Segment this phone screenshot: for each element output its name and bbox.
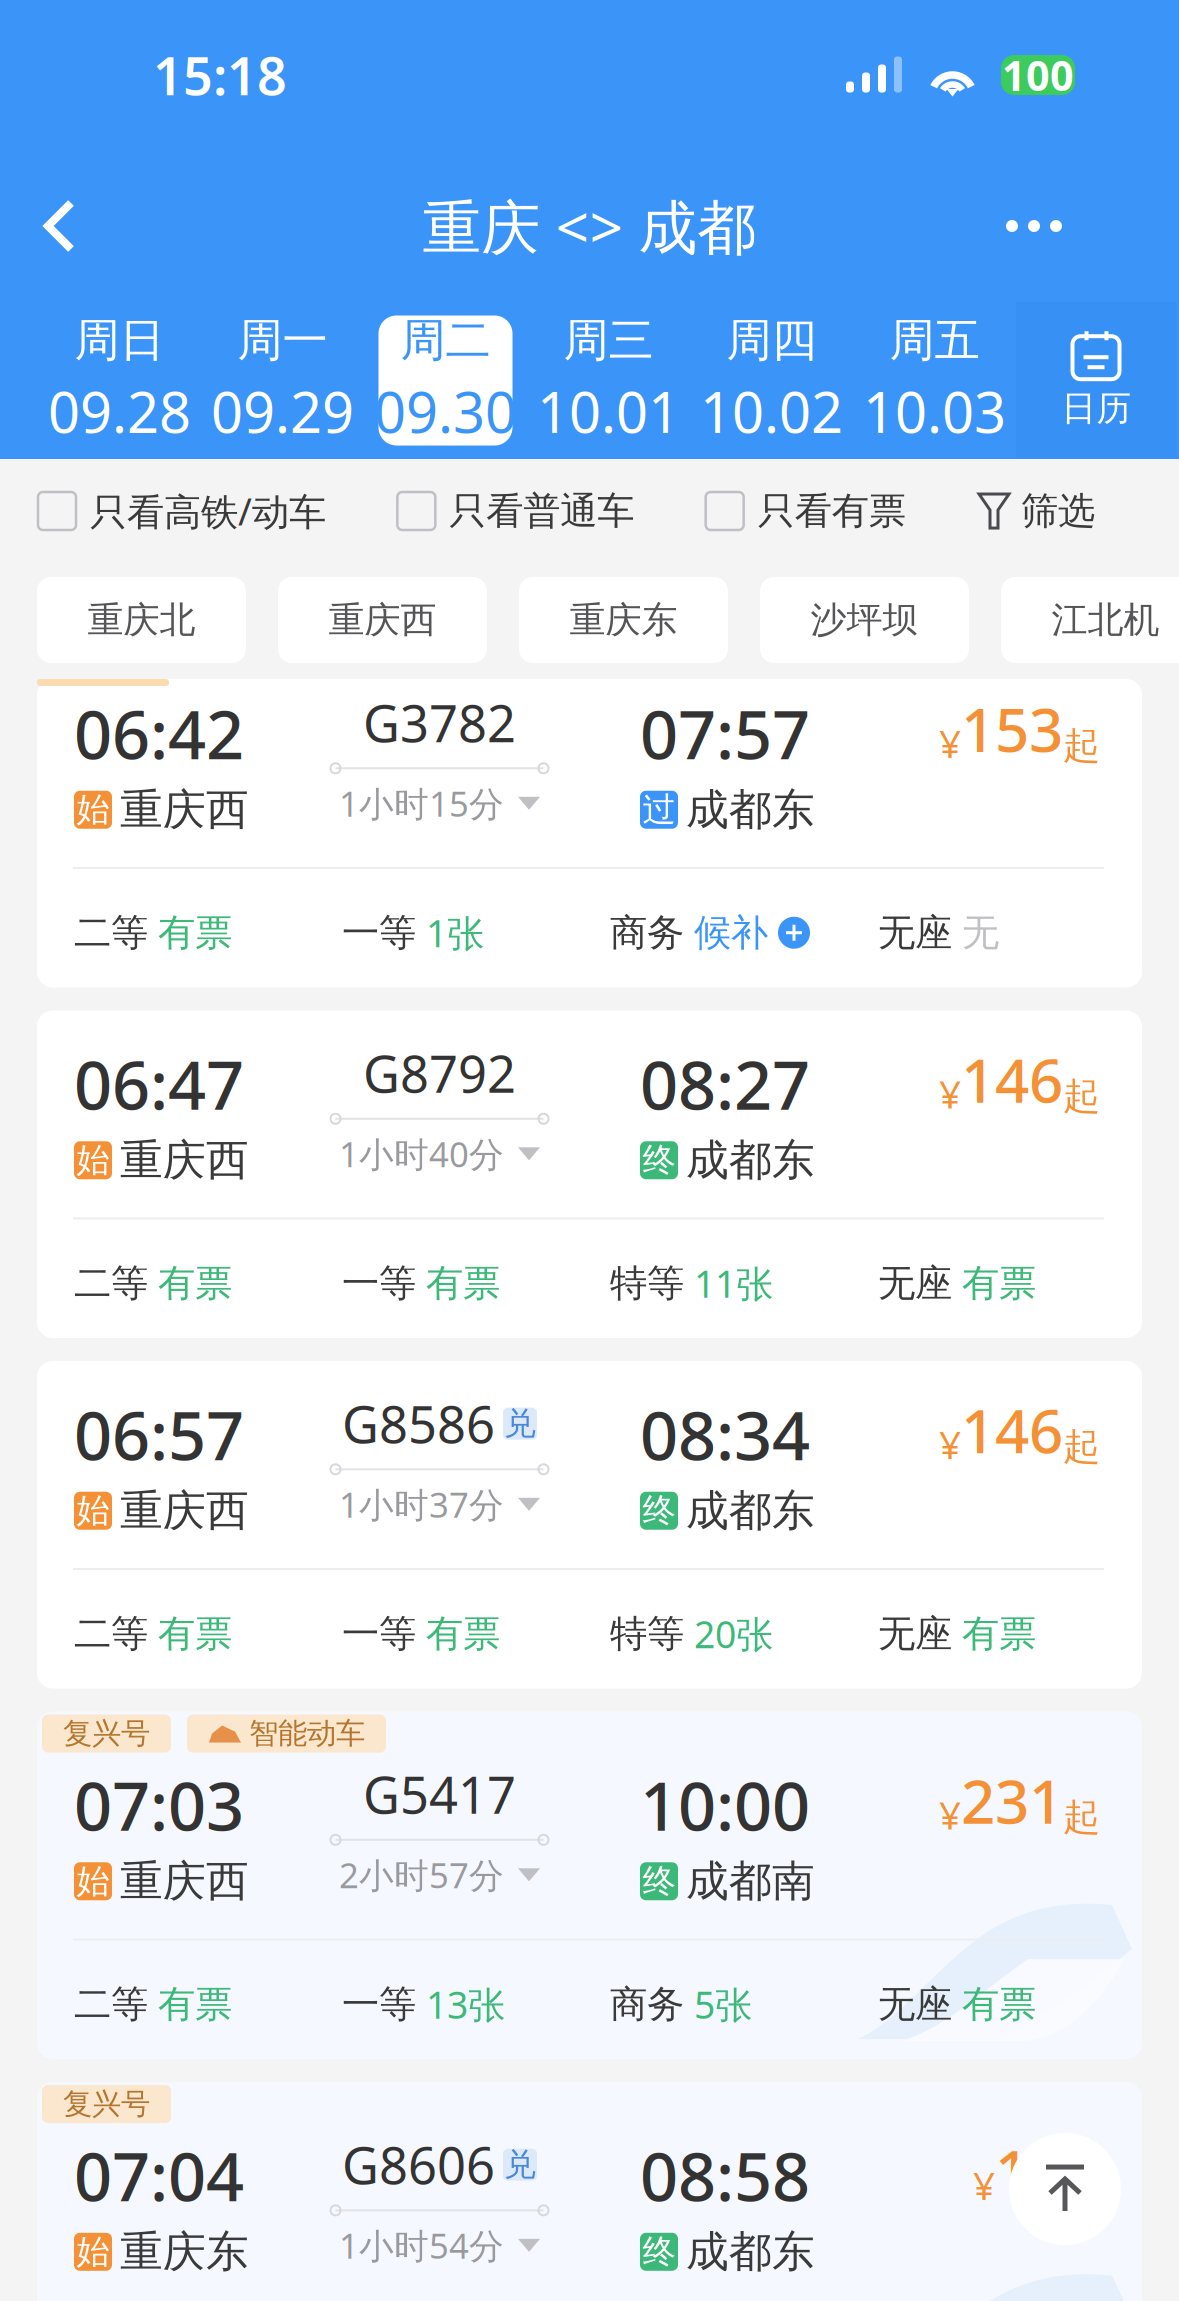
- staticText: 2小时57分: [339, 1852, 504, 1898]
- staticText: 筛选: [1021, 488, 1095, 534]
- staticText: 成都南: [686, 1855, 815, 1907]
- staticText: 周三: [563, 312, 653, 368]
- staticText: 商务: [610, 910, 684, 956]
- button[interactable]: 只看高铁/动车: [38, 486, 326, 536]
- button[interactable]: 复兴号: [37, 2082, 1142, 2301]
- staticText: 无座: [878, 910, 952, 956]
- staticText: 09.30: [374, 374, 517, 449]
- staticText: 153: [961, 689, 1063, 769]
- staticText: 周一: [237, 312, 327, 368]
- staticText: 重庆西: [120, 1134, 249, 1186]
- staticText: 有票: [158, 1981, 232, 2027]
- button[interactable]: 重庆北: [37, 577, 246, 663]
- staticText: 10.03: [863, 374, 1006, 449]
- staticText: 成都东: [686, 783, 815, 836]
- staticText: 始: [76, 789, 109, 830]
- staticText: 1小时40分: [339, 1131, 504, 1177]
- button[interactable]: 只看普通车: [397, 488, 634, 534]
- staticText: 始: [76, 1140, 109, 1181]
- staticText: ¥: [939, 1068, 961, 1119]
- staticText: 有票: [426, 1260, 500, 1306]
- button[interactable]: 周日: [38, 302, 201, 459]
- button[interactable]: 筛选: [977, 488, 1095, 534]
- staticText: 一等: [342, 1611, 416, 1657]
- staticText: 起: [1063, 723, 1100, 769]
- button[interactable]: 江北机: [1001, 577, 1179, 663]
- staticText: 始: [76, 1490, 109, 1531]
- staticText: 只看高铁/动车: [90, 486, 326, 536]
- staticText: 特等: [610, 1260, 684, 1306]
- staticText: 终: [642, 1140, 675, 1181]
- button[interactable]: 日历: [1016, 302, 1177, 459]
- staticText: 起: [1063, 1424, 1100, 1470]
- staticText: 5张: [694, 1979, 752, 2029]
- staticText: 重庆北: [87, 598, 195, 642]
- staticText: 08:58: [640, 2131, 810, 2220]
- staticText: 无座: [878, 1260, 952, 1306]
- staticText: G8586: [342, 1390, 495, 1457]
- staticText: 06:42: [74, 689, 244, 777]
- staticText: 周五: [889, 312, 979, 368]
- button[interactable]: 周一: [201, 302, 364, 459]
- button[interactable]: 06:57: [37, 1361, 1142, 1688]
- staticText: 成都东: [686, 2226, 815, 2278]
- staticText: G3782: [363, 689, 516, 756]
- staticText: 只看普通车: [449, 488, 634, 534]
- staticText: ¥: [939, 717, 961, 769]
- staticText: 过: [642, 789, 675, 830]
- staticText: 09.28: [48, 374, 191, 449]
- staticText: 20张: [694, 1609, 773, 1659]
- staticText: 终: [642, 1861, 675, 1902]
- staticText: 06:47: [74, 1039, 244, 1128]
- button[interactable]: 周四: [690, 302, 853, 459]
- button[interactable]: Scroll to top: [1009, 2133, 1121, 2245]
- button[interactable]: 复兴号: [37, 1711, 1142, 2059]
- button[interactable]: More: [975, 167, 1179, 285]
- staticText: 兑: [504, 2145, 536, 2184]
- staticText: 候补: [694, 910, 768, 956]
- staticText: G5417: [363, 1760, 516, 1828]
- staticText: 一等: [342, 1260, 416, 1306]
- staticText: 重庆西: [120, 1485, 249, 1537]
- staticText: 一等: [342, 910, 416, 956]
- staticText: 复兴号: [63, 2086, 150, 2122]
- staticText: G8792: [363, 1039, 516, 1107]
- staticText: 成都东: [686, 1485, 815, 1537]
- button[interactable]: Back: [0, 168, 109, 284]
- staticText: G8606: [342, 2131, 495, 2198]
- staticText: 终: [642, 1490, 675, 1531]
- staticText: 10.02: [700, 374, 843, 449]
- staticText: 周四: [726, 312, 816, 368]
- staticText: 复兴号: [63, 1715, 150, 1751]
- staticText: 二等: [74, 1260, 148, 1306]
- staticText: 周日: [74, 312, 164, 368]
- button[interactable]: 周五: [853, 302, 1016, 459]
- staticText: 13张: [426, 1979, 505, 2029]
- button[interactable]: 只看有票: [706, 488, 906, 534]
- button[interactable]: 06:47: [37, 1010, 1142, 1338]
- staticText: 起: [1063, 2165, 1100, 2211]
- staticText: 始: [76, 1861, 109, 1902]
- staticText: 08:27: [640, 1039, 810, 1128]
- staticText: 11张: [694, 1258, 773, 1308]
- button[interactable]: 重庆东: [519, 577, 728, 663]
- button[interactable]: 06:42: [37, 679, 1142, 987]
- staticText: 终: [642, 2231, 675, 2272]
- button[interactable]: 周二: [364, 302, 527, 459]
- staticText: 日历: [1061, 387, 1131, 430]
- staticText: 09.29: [211, 374, 354, 449]
- staticText: 江北机: [1051, 598, 1159, 642]
- staticText: 18: [995, 2131, 1063, 2211]
- staticText: 重庆西: [328, 598, 436, 642]
- button[interactable]: 周三: [527, 302, 690, 459]
- staticText: 起: [1063, 1794, 1100, 1840]
- staticText: 1小时54分: [339, 2222, 504, 2268]
- staticText: 特等: [610, 1611, 684, 1657]
- staticText: 有票: [158, 1260, 232, 1306]
- staticText: 有票: [158, 910, 232, 956]
- staticText: 10.01: [537, 374, 680, 449]
- staticText: 06:57: [74, 1390, 244, 1478]
- button[interactable]: 沙坪坝: [760, 577, 969, 663]
- staticText: ¥: [939, 1418, 961, 1470]
- button[interactable]: 重庆西: [278, 577, 487, 663]
